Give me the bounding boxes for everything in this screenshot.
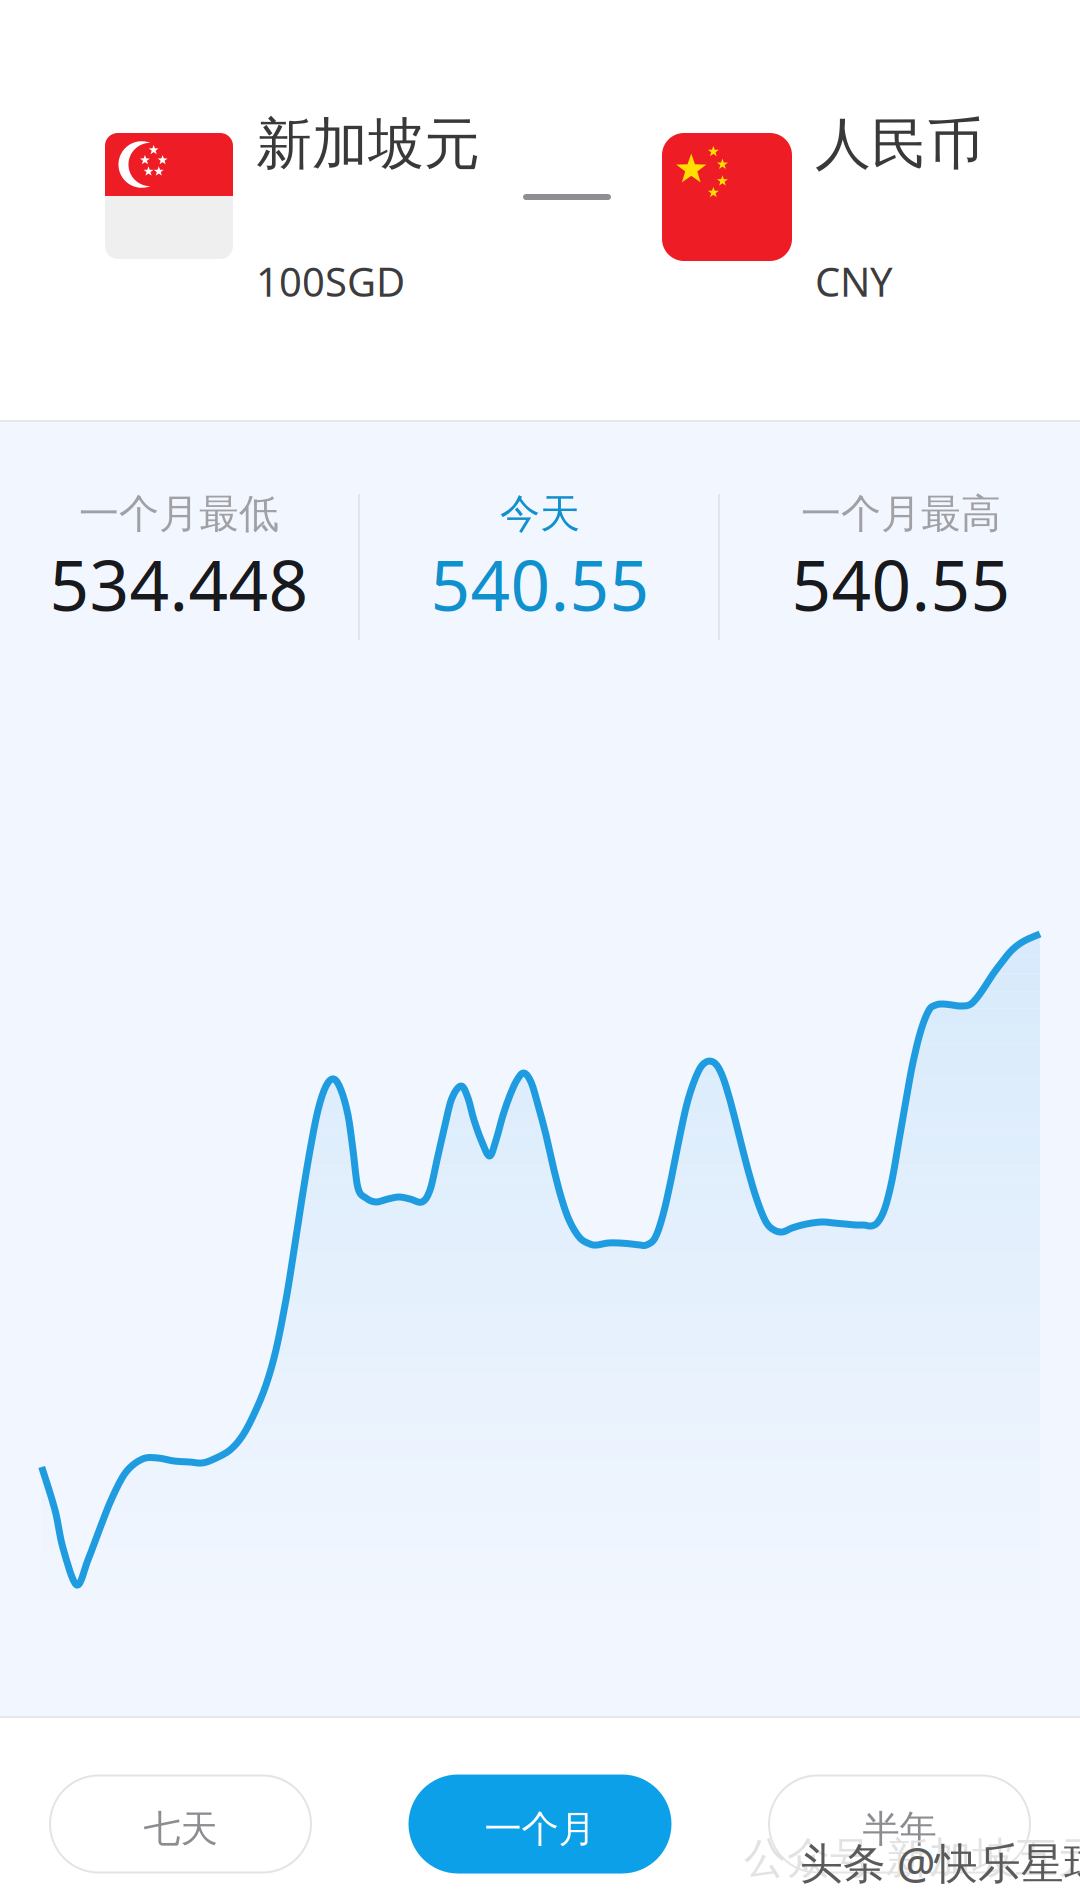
staticText: 540.55 — [430, 538, 649, 630]
staticText: 一个月最低 — [79, 489, 279, 538]
staticText: 100SGD — [256, 255, 405, 308]
staticText: 一个月 — [484, 1806, 595, 1852]
staticText: 新加坡元 — [256, 110, 480, 179]
button[interactable]: 人民币 — [815, 110, 983, 308]
button[interactable]: 七天 — [50, 1775, 311, 1872]
staticText: CNY — [815, 255, 893, 308]
button[interactable] — [105, 133, 233, 259]
staticText: 公众号 新加坡五元素 — [744, 1832, 1080, 1884]
staticText: 头条 @快乐星球7ivl — [800, 1834, 1080, 1891]
button[interactable]: 半年 — [769, 1775, 1030, 1872]
staticText: 540.55 — [791, 538, 1010, 630]
staticText: 七天 — [143, 1806, 217, 1852]
button[interactable]: 一个月 — [409, 1775, 670, 1872]
staticText: 一个月最高 — [801, 489, 1001, 538]
button[interactable]: 新加坡元 — [256, 110, 480, 308]
staticText: 半年 — [862, 1806, 936, 1852]
staticText: 人民币 — [815, 110, 983, 179]
staticText: 534.448 — [49, 538, 308, 630]
staticText: 今天 — [500, 489, 580, 538]
button[interactable] — [662, 133, 792, 261]
